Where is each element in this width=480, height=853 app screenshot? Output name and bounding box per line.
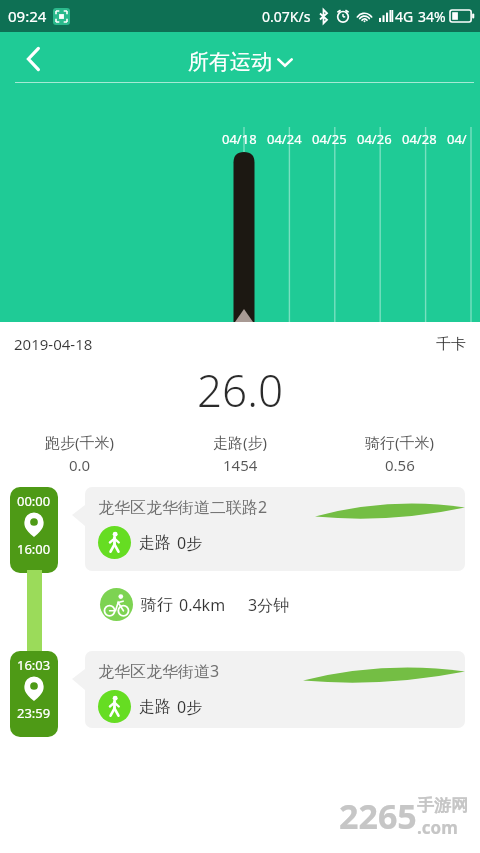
button[interactable]: 00:00	[10, 487, 58, 573]
button[interactable]: 骑行	[100, 588, 290, 621]
staticText: 04/26	[357, 130, 392, 148]
staticText: 04/18	[222, 130, 257, 148]
staticText: 龙华区龙华街道3	[98, 660, 220, 682]
staticText: 04/28	[402, 130, 437, 148]
staticText: 2265	[339, 793, 417, 839]
staticText: 龙华区龙华街道二联路2	[98, 496, 268, 518]
button[interactable]: 走路	[98, 690, 203, 723]
staticText: 千卡	[436, 335, 466, 354]
staticText: 手游网	[417, 795, 468, 816]
button[interactable]: 龙华区龙华街道3	[85, 651, 465, 728]
staticText: 走路	[139, 533, 171, 553]
staticText: 骑行	[141, 595, 173, 615]
staticText: 所有运动	[188, 49, 272, 75]
staticText: 0.0	[69, 455, 91, 475]
button[interactable]: 所有运动	[178, 45, 303, 79]
staticText: 26.0	[197, 360, 284, 420]
staticText: 0.56	[385, 455, 415, 475]
staticText: 走路	[139, 697, 171, 717]
staticText: 04/24	[267, 130, 302, 148]
staticText: 0步	[177, 696, 203, 718]
staticText: 34%	[418, 7, 446, 26]
staticText: 16:00	[17, 540, 51, 558]
staticText: 2019-04-18	[14, 334, 93, 354]
button[interactable]: 16:03	[10, 651, 58, 737]
staticText: 0步	[177, 532, 203, 554]
button[interactable]: 走路	[98, 526, 203, 559]
staticText: 3分钟	[248, 594, 290, 616]
staticText: 16:03	[17, 656, 51, 674]
staticText: 00:00	[17, 492, 51, 510]
staticText: 跑步(千米)	[45, 432, 115, 452]
staticText: 0.07K/s	[262, 7, 311, 26]
button[interactable]: Back	[6, 34, 62, 84]
staticText: 骑行(千米)	[365, 432, 435, 452]
staticText: 04/	[447, 130, 467, 148]
staticText: 走路(步)	[213, 432, 268, 452]
button[interactable]: 龙华区龙华街道二联路2	[85, 487, 465, 571]
staticText: 1454	[223, 455, 258, 475]
staticText: 23:59	[17, 704, 51, 722]
staticText: 04/25	[312, 130, 347, 148]
staticText: .com	[417, 816, 458, 839]
staticText: 09:24	[8, 6, 47, 26]
staticText: 4G	[395, 7, 414, 26]
staticText: 0.4km	[179, 594, 226, 616]
